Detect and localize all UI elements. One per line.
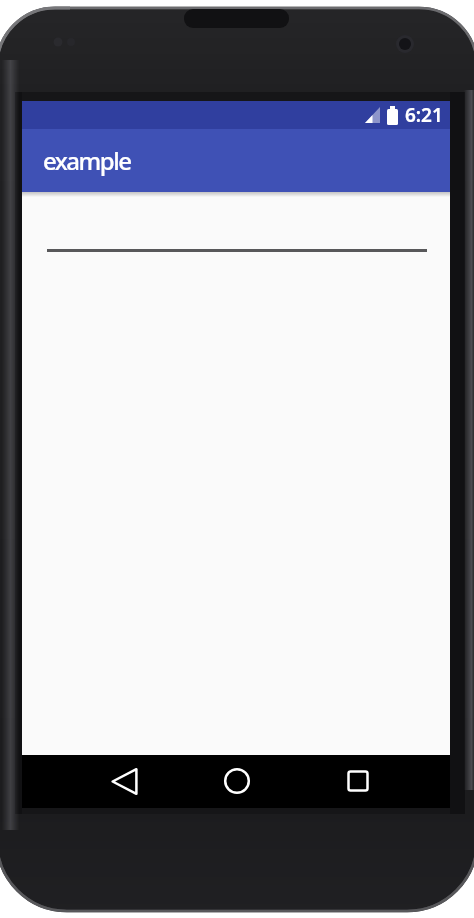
button[interactable] <box>334 757 382 805</box>
staticText: 6:21 <box>405 102 443 128</box>
button[interactable] <box>100 757 148 805</box>
staticText: example <box>43 144 131 177</box>
button[interactable] <box>213 757 261 805</box>
